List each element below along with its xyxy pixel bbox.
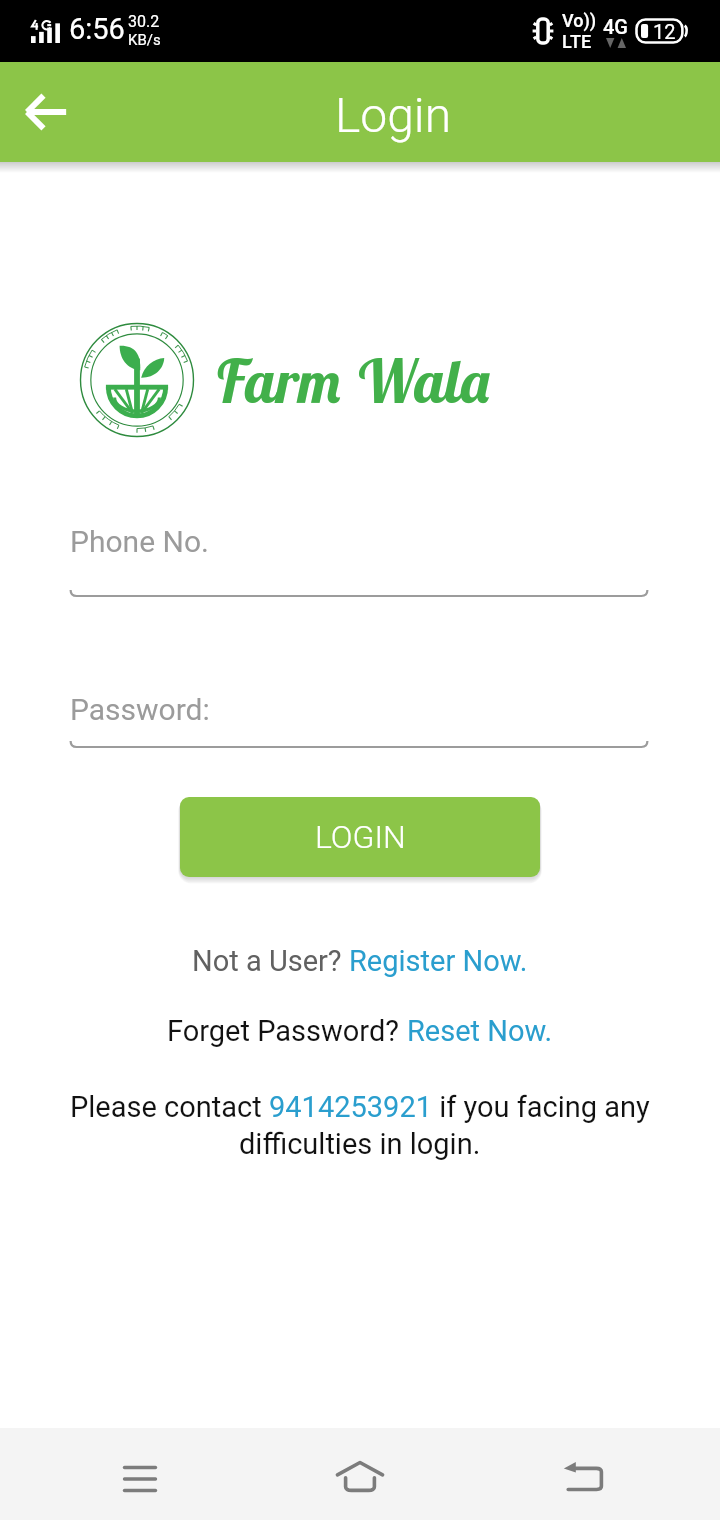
staticText: Login (335, 87, 452, 143)
button[interactable]: Reset Now. (407, 1014, 553, 1048)
staticText: difficulties in login. (239, 1127, 481, 1161)
staticText: Not a User? (192, 944, 349, 978)
staticText: Farm Wala (214, 344, 493, 418)
button[interactable]: Register Now. (349, 944, 528, 978)
staticText: if you facing any (432, 1090, 650, 1124)
button[interactable]: Recent apps (97, 1436, 183, 1520)
button[interactable]: Password: (70, 686, 648, 749)
staticText: Please contact (70, 1090, 269, 1124)
button[interactable]: Back (14, 80, 78, 144)
staticText: 6:56 (69, 12, 125, 46)
staticText: 12 (653, 20, 676, 43)
staticText: 30.2 (128, 12, 160, 31)
staticText: Vo)) (562, 10, 597, 31)
staticText: Password: (70, 692, 210, 727)
staticText: 4G (603, 15, 628, 38)
button[interactable]: 9414253921 (269, 1090, 432, 1124)
button[interactable]: Back (540, 1434, 626, 1520)
staticText: LOGIN (315, 818, 406, 856)
staticText: LTE (562, 31, 592, 52)
button[interactable]: Home (317, 1433, 403, 1519)
staticText: Forget Password? (167, 1014, 407, 1048)
staticText: Phone No. (70, 524, 209, 559)
button[interactable]: LOGIN (180, 797, 540, 877)
staticText: KB/s (128, 31, 161, 49)
button[interactable]: Phone No. (70, 518, 648, 598)
